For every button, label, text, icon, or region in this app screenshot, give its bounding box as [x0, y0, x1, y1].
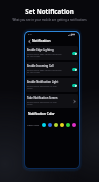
button[interactable]: Enable Incoming Call: [26, 62, 78, 76]
staticText: Enable display notification on your scre…: [27, 101, 57, 105]
staticText: Notification Color: [28, 112, 55, 116]
staticText: Enable display edge lighting notificatio…: [27, 53, 62, 57]
staticText: Enable Notification Light: [27, 80, 59, 84]
staticText: Enable Edge Lighting: [27, 48, 54, 52]
button[interactable]: Color: [66, 123, 70, 127]
button[interactable]: Take Notification Screen: [26, 94, 78, 108]
button[interactable]: Color: [48, 123, 52, 127]
button[interactable]: Color: [42, 123, 46, 127]
staticText: Enable display notification on your scre…: [27, 85, 57, 89]
staticText: Neon Color: [27, 124, 40, 127]
button[interactable]: Enable Edge Lighting: [26, 46, 78, 60]
staticText: Enable display edge lighting notificatio…: [27, 69, 62, 73]
staticText: 9:41: [28, 33, 32, 36]
staticText: Take Notification Screen: [27, 96, 58, 100]
staticText: What you see in your mobile are getting …: [12, 18, 87, 22]
button[interactable]: Toggle Enable Incoming Call: [72, 68, 77, 71]
button[interactable]: Toggle Enable Edge Lighting: [72, 52, 77, 55]
button[interactable]: Enable Notification Light: [26, 78, 78, 92]
button[interactable]: Color: [60, 123, 64, 127]
button[interactable]: Color: [54, 123, 58, 127]
staticText: Set Notification: [25, 7, 74, 15]
button[interactable]: Back: [27, 39, 31, 43]
staticText: Notification: [32, 39, 51, 43]
button[interactable]: Color: [72, 123, 76, 127]
button[interactable]: Toggle Enable Notification Light: [72, 84, 77, 87]
staticText: Enable Incoming Call: [27, 64, 54, 68]
button[interactable]: Open Take Notification Screen: [72, 99, 77, 104]
